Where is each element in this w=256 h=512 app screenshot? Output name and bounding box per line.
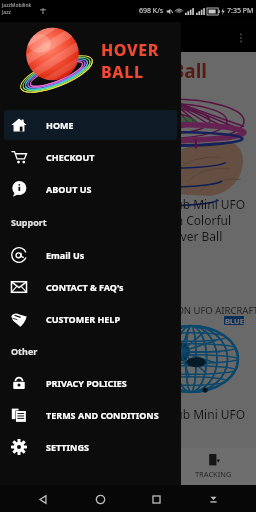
staticText: Hover Ball [110,58,207,84]
staticText: 7:35 PM [227,6,254,16]
staticText: Support [11,216,47,228]
button[interactable]: HOME [4,110,177,140]
staticText: Other [11,345,38,357]
staticText: 698 K/s [139,6,164,16]
staticText: SETTINGS [46,441,89,453]
button[interactable]: Email Us [4,240,177,270]
staticText: CHECKOUT [46,151,95,163]
staticText: TERMS AND CONDITIONS [46,409,159,421]
staticText: Email Us [46,249,85,261]
button[interactable]: Recent apps [143,486,169,512]
staticText: Jazz [2,9,11,16]
button[interactable]: Back [30,486,56,512]
staticText: PRIVACY POLICIES [46,377,127,389]
button[interactable]: TERMS AND CONDITIONS [4,400,177,430]
staticText: JazzMobilink [2,2,32,9]
staticText: BLUE [225,316,244,325]
staticText: BALL [101,61,144,83]
staticText: ABOUT US [46,183,92,195]
button[interactable]: CHECKOUT [4,142,177,172]
button[interactable]: CART [86,448,171,485]
staticText: HOVER [101,39,160,61]
button[interactable]: Hide keyboard [200,486,226,512]
button[interactable]: PRIVACY POLICIES [4,368,177,398]
staticText: Scoot Sky Rider Skyclub Mini UFO Drone H… [58,406,246,438]
other: More options [235,32,247,44]
button[interactable]: Home [87,486,113,512]
staticText: Scoot Sky Rider Skyclub Mini UFO Drone H… [58,196,246,244]
staticText: HOME [46,119,74,131]
staticText: TRACKING [191,469,236,479]
button[interactable]: TRACKING [171,448,256,485]
staticText: CONTACT & FAQ's [46,281,124,293]
button[interactable]: SETTINGS [4,432,177,462]
button[interactable]: ABOUT US [4,174,177,204]
button[interactable]: CUSTOMER HELP [4,304,177,334]
staticText: CUSTOMER HELP [46,313,120,325]
staticText: FLYING HAND OPERATED MINI HELICON UFO AI… [11,304,256,317]
button[interactable]: HOME [0,448,86,485]
button[interactable]: CONTACT & FAQ's [4,272,177,302]
